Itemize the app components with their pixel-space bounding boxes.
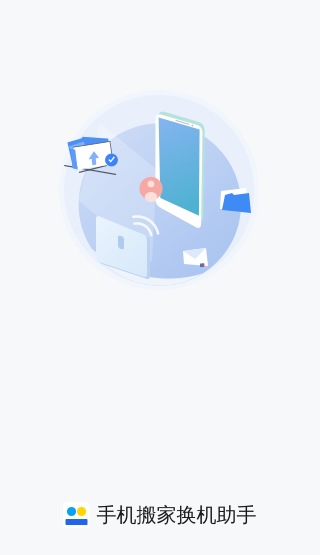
staticText: 手机搬家换机助手 [96,503,256,527]
